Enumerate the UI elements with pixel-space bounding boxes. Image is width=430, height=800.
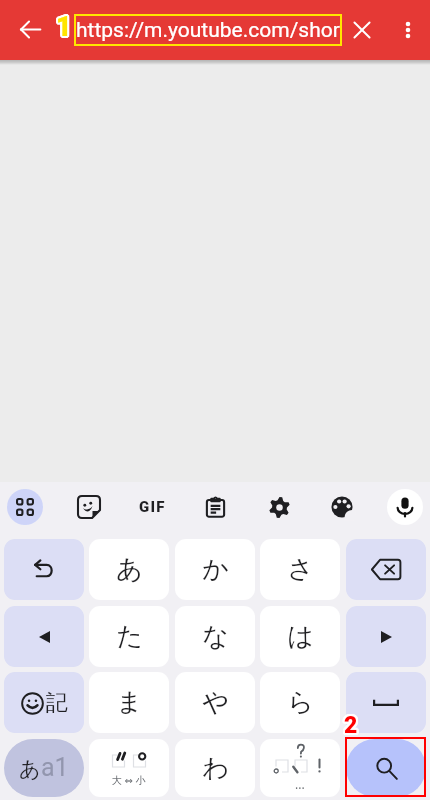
button[interactable]: Emoji: [4, 672, 84, 733]
button[interactable]: は: [260, 606, 340, 667]
staticText: 2: [343, 714, 357, 741]
staticText: 2: [343, 710, 357, 737]
staticText: 2: [346, 712, 360, 739]
staticText: 2: [342, 713, 356, 740]
staticText: a1: [41, 753, 69, 782]
button[interactable]: Settings: [261, 489, 297, 525]
staticText: 1: [58, 12, 74, 42]
staticText: 1: [55, 11, 71, 41]
button[interactable]: Search: [346, 739, 426, 797]
staticText: 1: [58, 11, 74, 41]
staticText: 2: [346, 713, 360, 740]
button[interactable]: か: [175, 539, 255, 600]
staticText: GIF: [139, 498, 166, 516]
button[interactable]: GIF: [134, 489, 170, 525]
button[interactable]: More options: [386, 8, 430, 52]
staticText: 1: [56, 13, 72, 43]
staticText: な: [202, 620, 229, 653]
button[interactable]: Switch input mode: [4, 739, 84, 797]
staticText: 1: [57, 12, 73, 42]
staticText: 2: [343, 711, 357, 738]
button[interactable]: Clipboard: [197, 489, 233, 525]
staticText: 2: [342, 711, 356, 738]
staticText: ...: [295, 776, 305, 792]
staticText: あ: [116, 553, 143, 586]
button[interactable]: あ: [89, 539, 169, 600]
staticText: 1: [54, 12, 70, 42]
staticText: 2: [345, 714, 359, 741]
button[interactable]: Stickers: [71, 489, 107, 525]
staticText: 1: [56, 9, 72, 39]
button[interactable]: ま: [89, 672, 169, 733]
staticText: さ: [287, 553, 314, 586]
staticText: た: [116, 620, 143, 653]
button[interactable]: た: [89, 606, 169, 667]
staticText: 1: [57, 10, 73, 40]
staticText: 1: [54, 11, 70, 41]
button[interactable]: Symbols: [7, 489, 43, 525]
staticText: 2: [343, 712, 357, 739]
button[interactable]: Back: [8, 7, 52, 51]
staticText: 2: [342, 712, 356, 739]
staticText: 1: [56, 11, 72, 41]
button[interactable]: Voice input: [387, 489, 423, 525]
staticText: 1: [57, 13, 73, 43]
staticText: 大 ⇔ 小: [112, 773, 146, 787]
button[interactable]: わ: [175, 739, 255, 797]
button[interactable]: Space: [346, 672, 426, 733]
staticText: 2: [345, 711, 359, 738]
staticText: 1: [55, 10, 71, 40]
staticText: 1: [56, 11, 72, 41]
staticText: 記: [46, 689, 68, 717]
staticText: ら: [287, 686, 314, 719]
button[interactable]: Close: [340, 8, 384, 52]
staticText: 2: [345, 712, 359, 739]
staticText: 2: [344, 712, 358, 739]
staticText: 1: [55, 13, 71, 43]
staticText: 2: [344, 714, 358, 741]
staticText: あ: [19, 756, 41, 782]
staticText: ま: [116, 686, 143, 719]
staticText: 2: [346, 711, 360, 738]
staticText: 1: [55, 9, 71, 39]
staticText: 2: [344, 711, 358, 738]
staticText: 1: [57, 11, 73, 41]
staticText: 2: [344, 712, 358, 739]
staticText: 1: [56, 12, 72, 42]
button[interactable]: さ: [260, 539, 340, 600]
staticText: や: [202, 686, 229, 719]
button[interactable]: な: [175, 606, 255, 667]
button[interactable]: Dakuten: [89, 739, 169, 797]
staticText: 2: [344, 710, 358, 737]
button[interactable]: Punctuation: [260, 739, 340, 797]
button[interactable]: ら: [260, 672, 340, 733]
staticText: 2: [345, 710, 359, 737]
staticText: 2: [345, 713, 359, 740]
staticText: か: [202, 553, 229, 586]
staticText: 1: [58, 10, 74, 40]
button[interactable]: https://m.youtube.com/shorts: [74, 14, 342, 46]
staticText: 1: [57, 9, 73, 39]
staticText: 1: [55, 12, 71, 42]
button[interactable]: や: [175, 672, 255, 733]
staticText: https://m.youtube.com/shorts: [76, 18, 342, 43]
button[interactable]: Undo: [4, 539, 84, 600]
staticText: 1: [54, 10, 70, 40]
staticText: わ: [202, 752, 229, 785]
button[interactable]: Themes: [324, 489, 360, 525]
staticText: 1: [56, 10, 72, 40]
staticText: は: [287, 620, 314, 653]
button[interactable]: Backspace: [346, 539, 426, 600]
staticText: 2: [344, 713, 358, 740]
staticText: 2: [343, 713, 357, 740]
button[interactable]: Move cursor right: [346, 606, 426, 667]
button[interactable]: Move cursor left: [4, 606, 84, 667]
